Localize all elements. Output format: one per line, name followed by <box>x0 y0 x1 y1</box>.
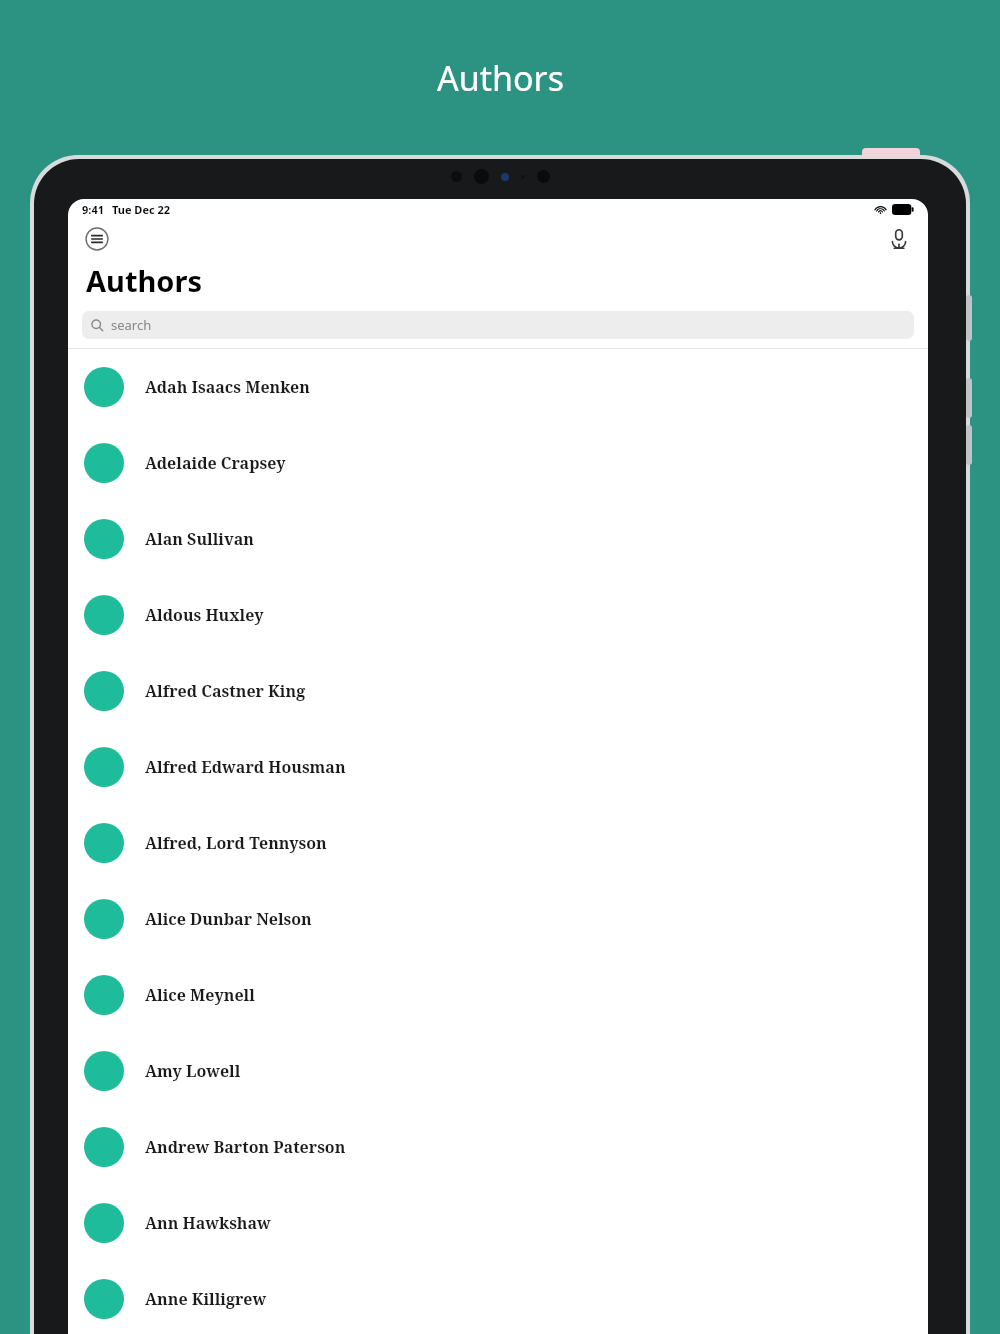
staticText: Alfred Edward Housman <box>145 756 346 778</box>
staticText: Tue Dec 22 <box>112 202 171 217</box>
button[interactable]: Alfred Castner King <box>68 653 928 729</box>
button[interactable]: Alfred, Lord Tennyson <box>68 805 928 881</box>
staticText: Ann Hawkshaw <box>145 1212 271 1234</box>
button[interactable]: Ann Hawkshaw <box>68 1185 928 1261</box>
staticText: 9:41 <box>82 202 104 217</box>
button[interactable]: Amy Lowell <box>68 1033 928 1109</box>
staticText: search <box>111 316 152 334</box>
staticText: Alan Sullivan <box>145 528 254 550</box>
button[interactable]: Anne Killigrew <box>68 1261 928 1334</box>
staticText: Adelaide Crapsey <box>145 452 286 474</box>
button[interactable]: Adelaide Crapsey <box>68 425 928 501</box>
staticText: Alfred Castner King <box>145 680 306 702</box>
button[interactable]: Alice Dunbar Nelson <box>68 881 928 957</box>
staticText: Authors <box>437 55 564 101</box>
button[interactable]: Menu <box>82 224 112 254</box>
button[interactable]: Alan Sullivan <box>68 501 928 577</box>
button[interactable]: search <box>82 311 914 339</box>
button[interactable]: Andrew Barton Paterson <box>68 1109 928 1185</box>
staticText: Anne Killigrew <box>145 1288 267 1310</box>
staticText: Alice Dunbar Nelson <box>145 908 312 930</box>
button[interactable]: Adah Isaacs Menken <box>68 349 928 425</box>
staticText: Alfred, Lord Tennyson <box>145 832 327 854</box>
staticText: Andrew Barton Paterson <box>145 1136 346 1158</box>
staticText: Amy Lowell <box>145 1060 241 1082</box>
button[interactable]: Alfred Edward Housman <box>68 729 928 805</box>
staticText: Alice Meynell <box>145 984 255 1006</box>
button[interactable]: Alice Meynell <box>68 957 928 1033</box>
button[interactable]: Voice search <box>884 224 914 254</box>
staticText: Adah Isaacs Menken <box>145 376 310 398</box>
staticText: Aldous Huxley <box>145 604 264 626</box>
staticText: Authors <box>86 261 203 300</box>
button[interactable]: Aldous Huxley <box>68 577 928 653</box>
